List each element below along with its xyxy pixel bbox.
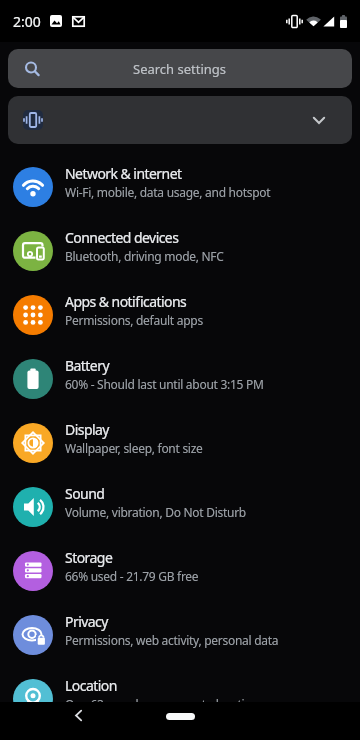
button[interactable]: Sound [0,475,360,539]
staticText: 66% used - 21.79 GB free [65,568,199,584]
staticText: 2:00 [13,12,41,31]
button[interactable]: Privacy [0,603,360,667]
staticText: Location [65,676,117,695]
button[interactable] [8,96,352,144]
staticText: Apps & notifications [65,292,187,311]
button[interactable]: Network & internet [0,155,360,219]
button[interactable] [56,702,100,740]
button[interactable]: Battery [0,347,360,411]
staticText: Privacy [65,612,108,631]
staticText: Permissions, web activity, personal data [65,632,279,648]
staticText: Volume, vibration, Do Not Disturb [65,504,246,520]
staticText: 60% - Should last until about 3:15 PM [65,376,264,392]
button[interactable]: Display [0,411,360,475]
button[interactable]: Connected devices [0,219,360,283]
staticText: Sound [65,484,105,503]
staticText: Battery [65,356,110,375]
staticText: Wi-Fi, mobile, data usage, and hotspot [65,184,271,200]
staticText: Permissions, default apps [65,312,203,328]
staticText: Wallpaper, sleep, font size [65,440,203,456]
button[interactable]: Location [0,667,360,731]
button[interactable]: Search settings [8,49,352,88]
staticText: Storage [65,548,113,567]
button[interactable]: Apps & notifications [0,283,360,347]
staticText: Search settings [133,60,227,78]
staticText: Network & internet [65,164,182,183]
button[interactable]: Storage [0,539,360,603]
staticText: On - 63 apps have access to location [65,696,259,712]
staticText: Connected devices [65,228,179,247]
staticText: Display [65,420,109,439]
staticText: Bluetooth, driving mode, NFC [65,248,224,264]
button[interactable] [166,713,195,720]
